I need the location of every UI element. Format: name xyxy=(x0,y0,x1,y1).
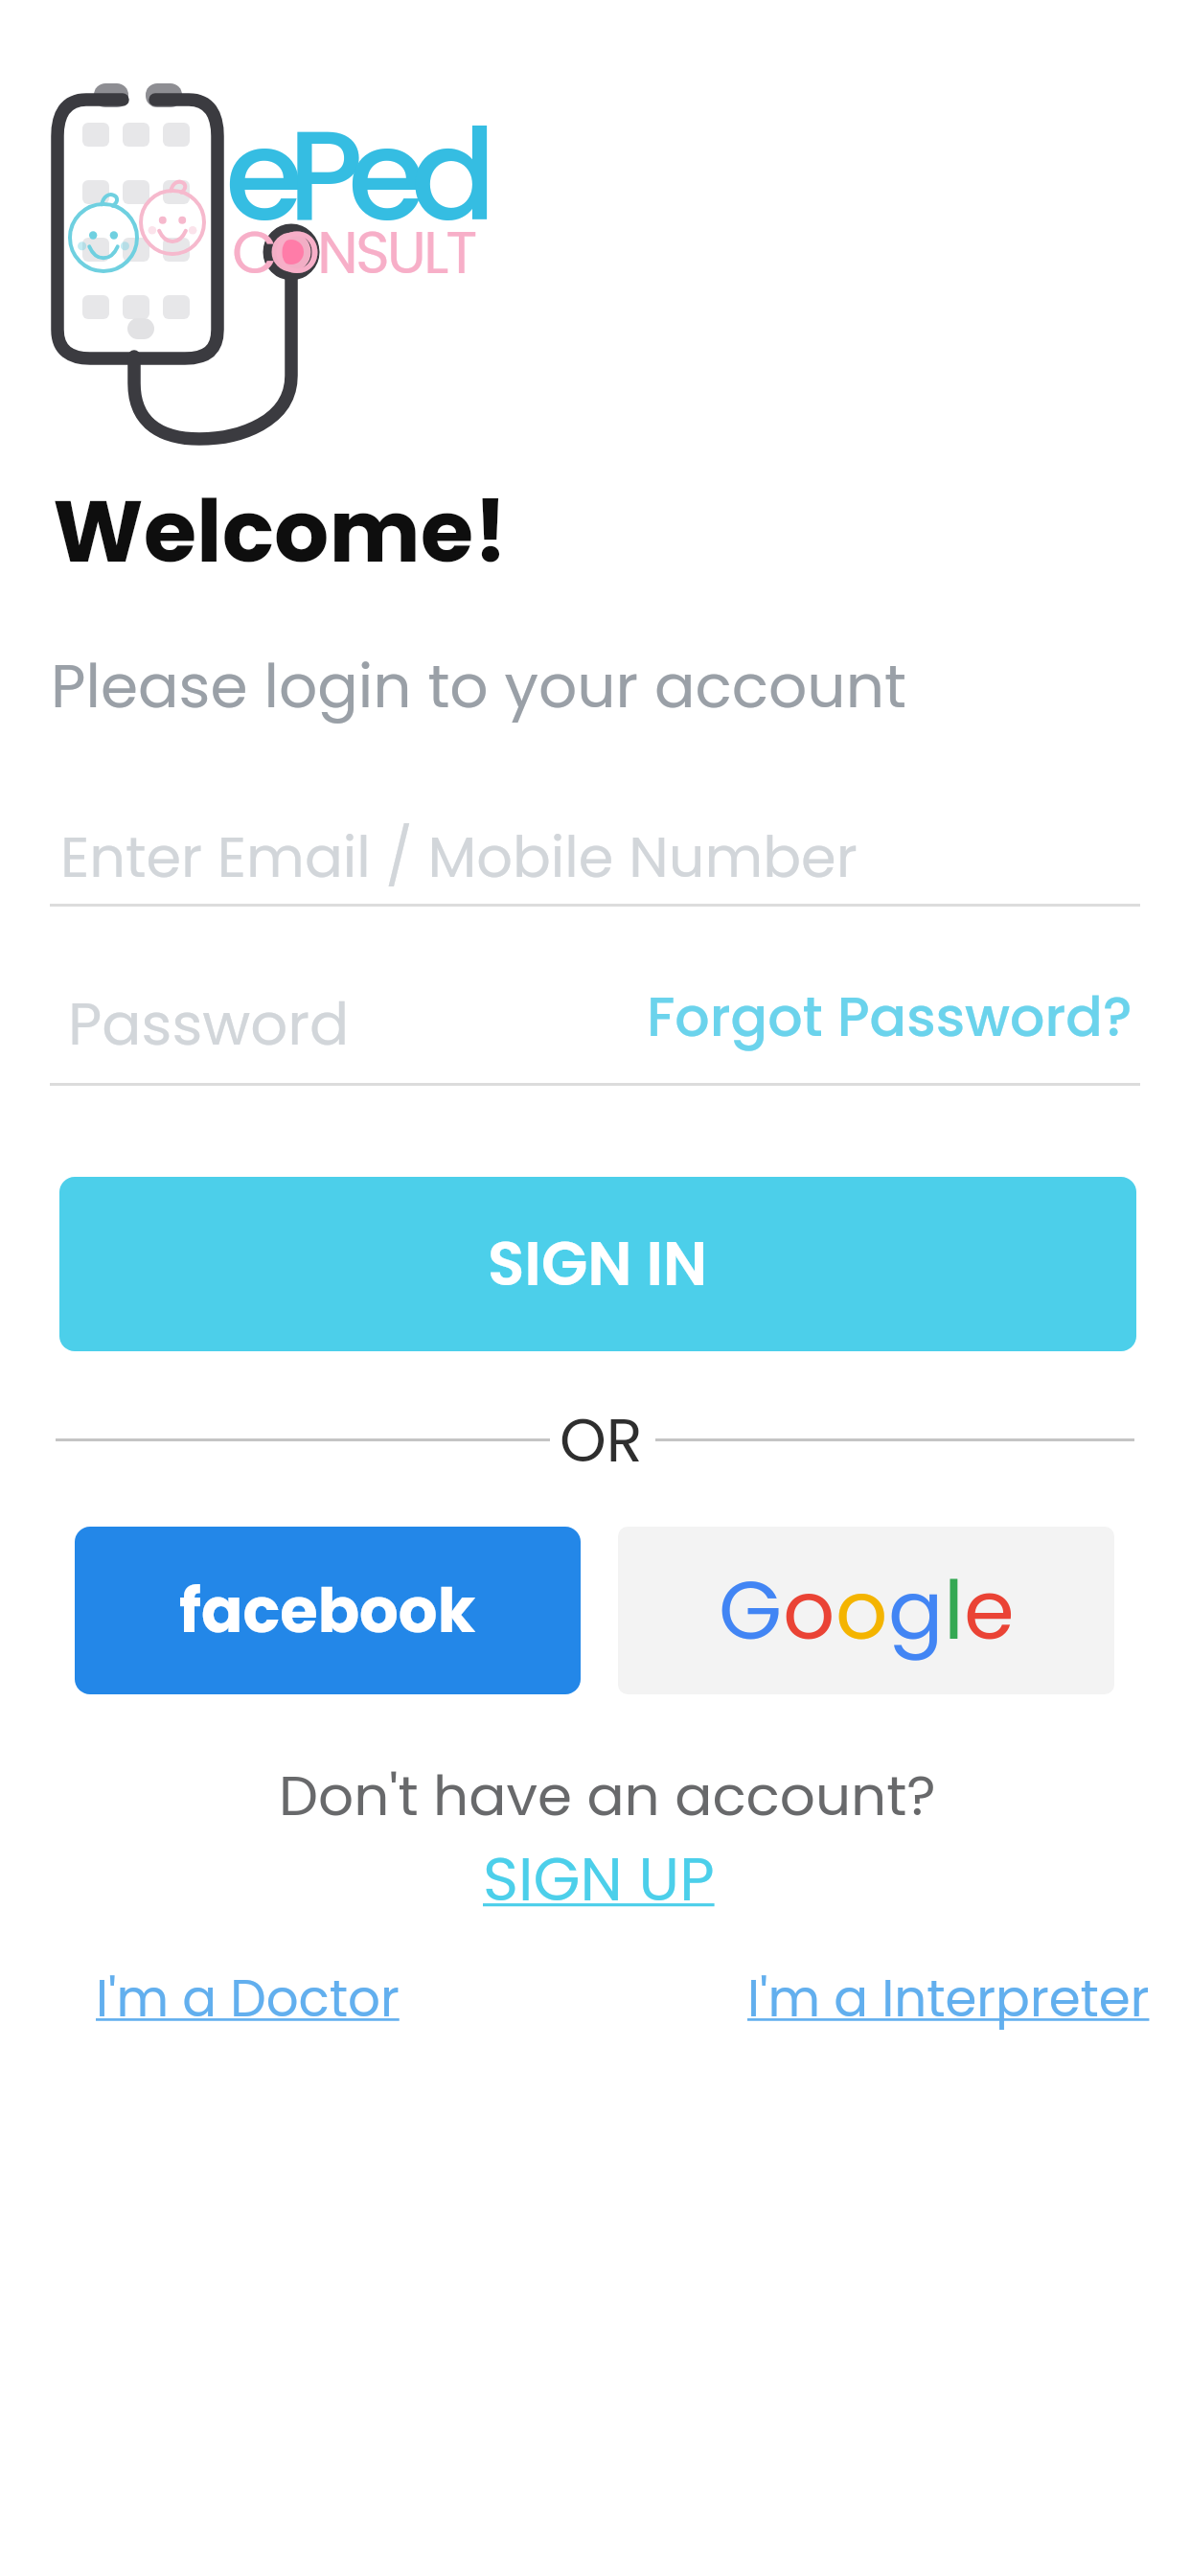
staticText: SIGN UP xyxy=(483,1837,715,1921)
button[interactable]: SIGN UP xyxy=(483,1837,715,1921)
button[interactable]: I'm a Doctor xyxy=(96,1963,400,2034)
staticText: I'm a Doctor xyxy=(96,1963,400,2034)
staticText: Welcome! xyxy=(53,471,508,592)
button[interactable]: I'm a Interpreter xyxy=(747,1963,1150,2034)
staticText: Please login to your account xyxy=(51,644,906,728)
staticText: Enter Email / Mobile Number xyxy=(60,817,858,897)
button[interactable]: Enter Email / Mobile Number xyxy=(50,795,1140,907)
button[interactable]: facebook xyxy=(75,1527,581,1694)
staticText: CONSULT xyxy=(232,212,475,293)
staticText: OR xyxy=(560,1399,643,1483)
staticText: e xyxy=(964,1553,1015,1667)
staticText: G xyxy=(719,1553,783,1667)
staticText: l xyxy=(944,1553,964,1667)
staticText: ePed xyxy=(225,86,481,264)
button[interactable]: G xyxy=(618,1527,1114,1694)
staticText: SIGN IN xyxy=(488,1222,708,1306)
staticText: o xyxy=(783,1553,835,1667)
other: ePed Consult logo xyxy=(34,71,514,454)
staticText: I'm a Interpreter xyxy=(747,1963,1150,2034)
staticText: o xyxy=(835,1553,888,1667)
staticText: g xyxy=(888,1553,944,1667)
button[interactable]: SIGN IN xyxy=(59,1177,1136,1351)
button[interactable]: Forgot Password? xyxy=(632,974,1140,1086)
staticText: Password xyxy=(68,983,350,1065)
staticText: Forgot Password? xyxy=(647,978,1133,1055)
staticText: Don't have an account? xyxy=(279,1757,936,1834)
staticText: facebook xyxy=(179,1568,476,1654)
button[interactable]: Password xyxy=(50,974,586,1086)
